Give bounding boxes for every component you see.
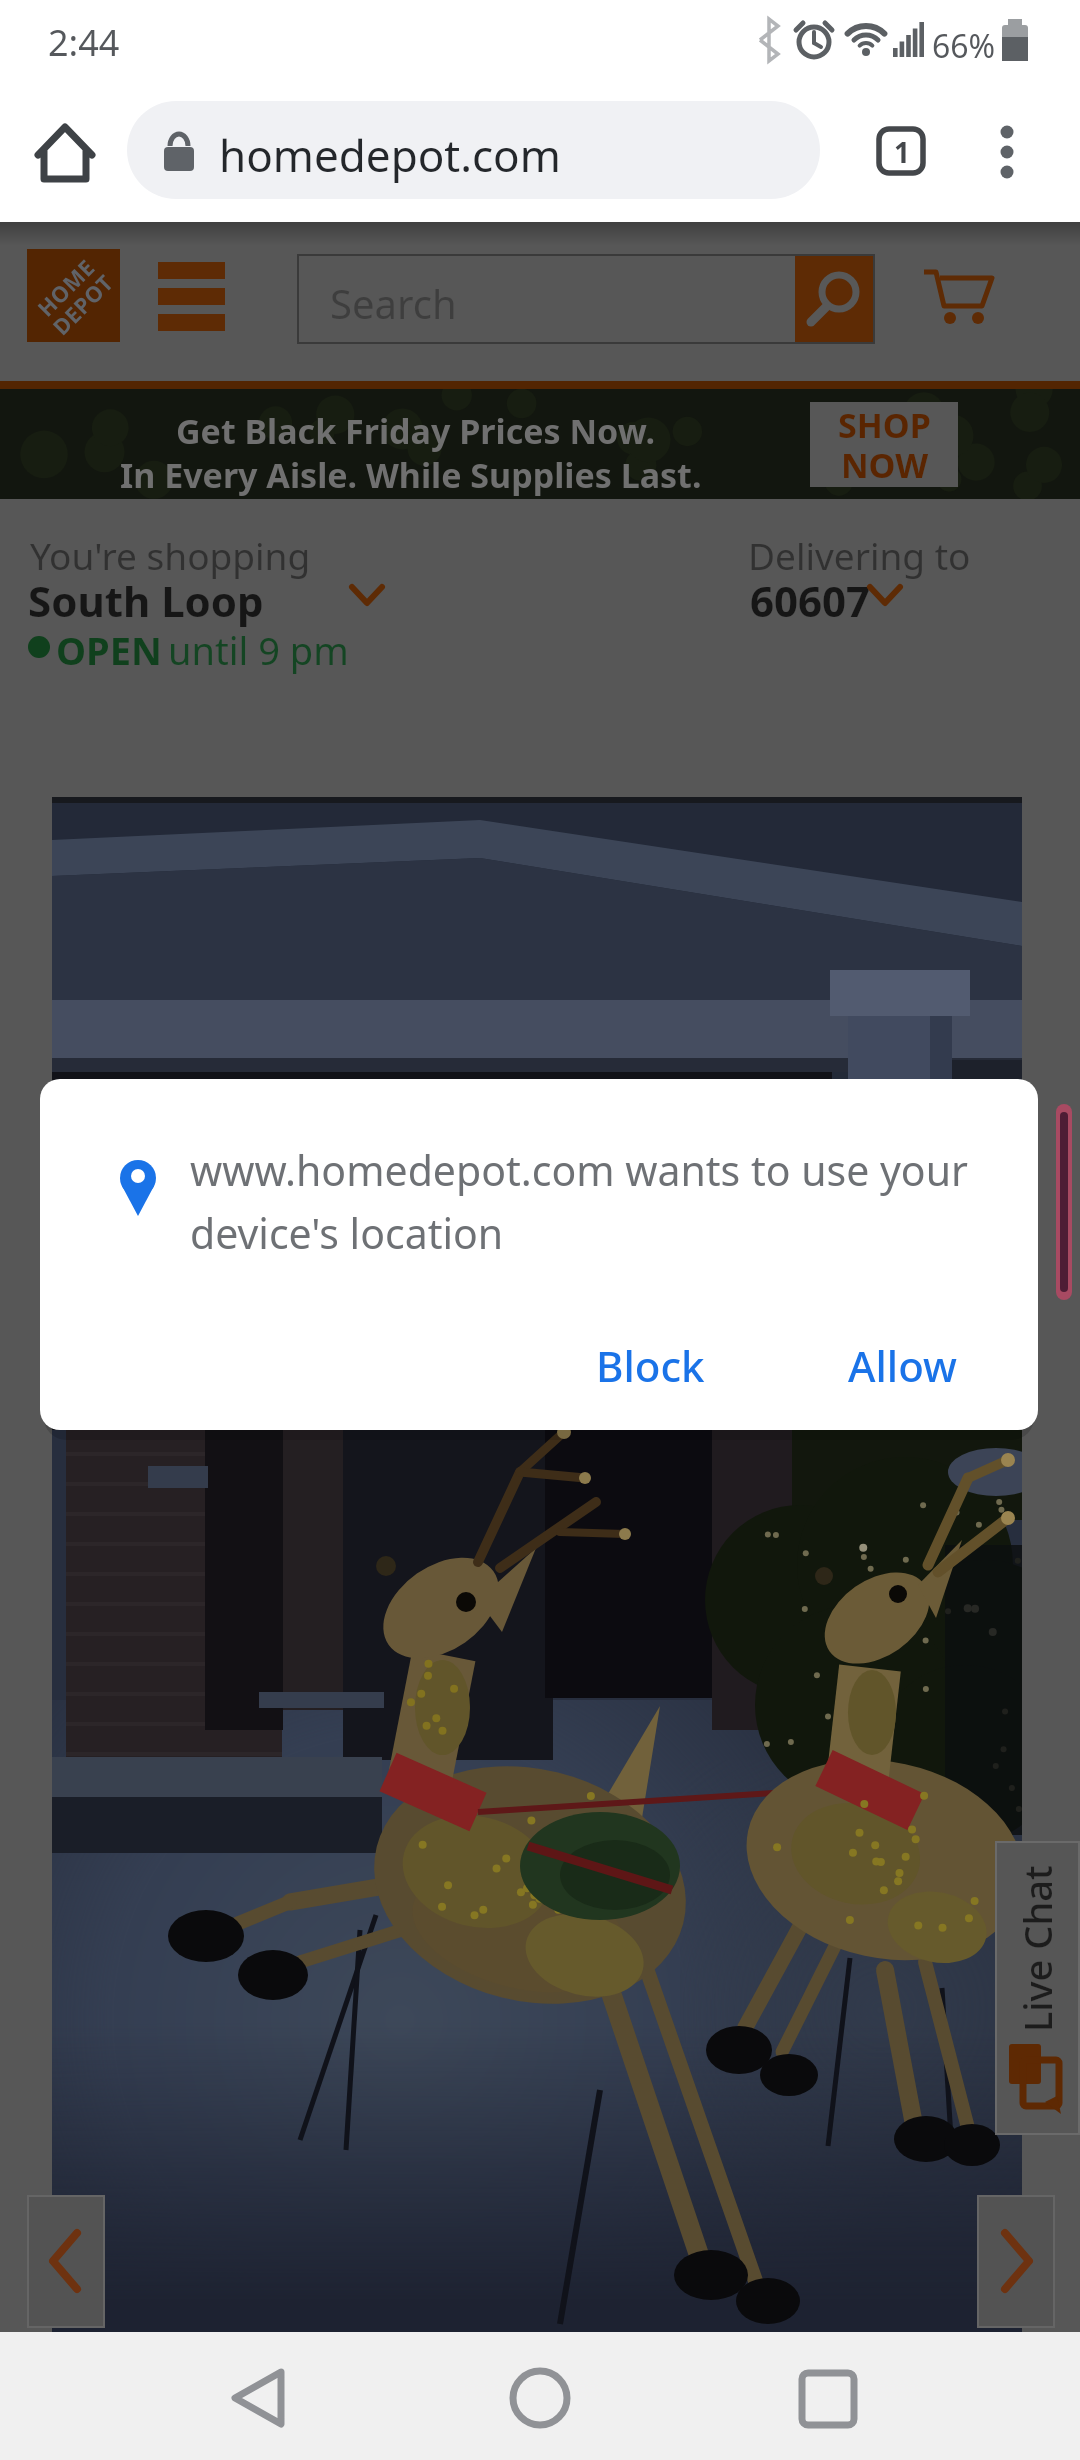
staticText: Search [330, 276, 457, 330]
staticText: You're shopping [30, 530, 311, 580]
button[interactable] [740, 520, 1080, 640]
button[interactable] [777, 2348, 877, 2448]
button[interactable] [27, 2195, 105, 2328]
staticText: Live Chat [1011, 1865, 1063, 2032]
button[interactable] [30, 115, 100, 187]
button[interactable]: Block [560, 1320, 740, 1410]
button[interactable]: HOME DEPOT [27, 249, 120, 342]
staticText: South Loop [28, 572, 264, 629]
button[interactable] [490, 2348, 590, 2448]
staticText: 66% [932, 24, 996, 68]
staticText: device's location [190, 1205, 504, 1261]
staticText: SHOP NOW [838, 402, 931, 487]
staticText: In Every Aisle. While Supplies Last. [120, 452, 702, 498]
staticText: Block [596, 1337, 705, 1394]
staticText: HOME DEPOT [28, 250, 119, 341]
button[interactable] [995, 1841, 1080, 2135]
staticText: OPEN [56, 624, 162, 676]
button[interactable] [127, 101, 820, 199]
staticText: 1 [894, 133, 911, 171]
button[interactable]: 1 [876, 126, 928, 178]
staticText: Delivering to [748, 530, 971, 580]
button[interactable] [150, 252, 234, 342]
staticText: 60607 [750, 572, 871, 629]
staticText: homedepot.com [219, 125, 561, 185]
button[interactable] [977, 2195, 1055, 2328]
button[interactable] [985, 120, 1035, 184]
staticText: Allow [848, 1337, 957, 1394]
staticText: until 9 pm [168, 624, 349, 676]
button[interactable] [205, 2348, 305, 2448]
staticText: 2:44 [48, 18, 120, 67]
button[interactable] [920, 262, 1000, 332]
staticText: Get Black Friday Prices Now. [176, 408, 655, 454]
button[interactable] [0, 499, 540, 689]
button[interactable] [297, 254, 875, 344]
staticText: www.homedepot.com wants to use your [190, 1142, 968, 1198]
button[interactable]: Allow [812, 1320, 992, 1410]
button[interactable]: SHOP NOW [810, 402, 958, 487]
